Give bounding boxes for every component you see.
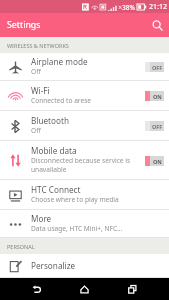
button[interactable]: Recents: [115, 278, 149, 300]
button[interactable]: More: [0, 210, 169, 238]
staticText: Personalize: [31, 260, 76, 271]
staticText: Bluetooth: [31, 115, 69, 126]
staticText: PERSONAL: [7, 243, 35, 250]
button[interactable]: Back: [19, 278, 53, 300]
button[interactable]: OFF: [145, 121, 164, 131]
staticText: 21:12: [149, 2, 167, 12]
button[interactable]: ON: [145, 156, 164, 166]
staticText: Choose where to play media: [31, 195, 119, 204]
staticText: Off: [31, 67, 41, 76]
staticText: Settings: [7, 19, 41, 31]
staticText: More: [31, 213, 52, 224]
button[interactable]: Mobile data: [0, 141, 169, 180]
button[interactable]: Wi-Fi: [0, 81, 169, 111]
button[interactable]: Personalize: [0, 254, 169, 278]
button[interactable]: HTC Connect: [0, 180, 169, 210]
button[interactable]: Home: [67, 278, 101, 300]
button[interactable]: OFF: [145, 62, 164, 72]
button[interactable]: Bluetooth: [0, 111, 169, 141]
staticText: ON: [153, 158, 162, 165]
staticText: Data usage, HTC Mini+, NFC...: [31, 224, 123, 233]
staticText: Off: [31, 126, 41, 135]
button[interactable]: Airplane mode: [0, 53, 169, 81]
button[interactable]: Search: [146, 14, 169, 37]
staticText: Airplane mode: [31, 56, 88, 67]
staticText: ON: [153, 93, 162, 100]
staticText: 38%: [122, 3, 135, 12]
staticText: Disconnected because service is unavaila…: [31, 156, 142, 174]
staticText: Connected to arese: [31, 96, 92, 105]
staticText: OFF: [152, 123, 163, 130]
button[interactable]: ON: [145, 91, 164, 101]
staticText: Mobile data: [31, 145, 77, 156]
staticText: HTC Connect: [31, 184, 81, 195]
staticText: OFF: [152, 64, 163, 71]
staticText: Wi-Fi: [31, 85, 50, 96]
staticText: WIRELESS & NETWORKS: [7, 42, 69, 49]
